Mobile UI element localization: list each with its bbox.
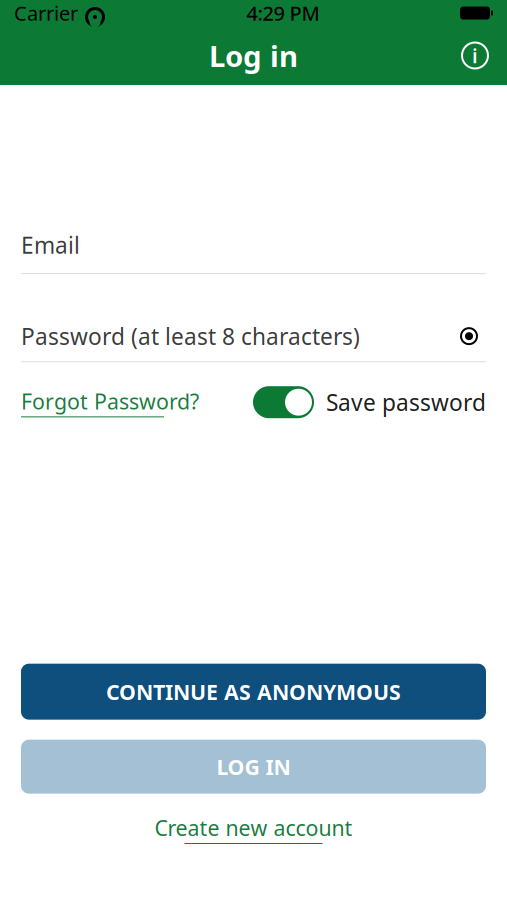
staticText: LOG IN (216, 752, 290, 781)
button[interactable]: LOG IN (21, 740, 486, 794)
staticText: Carrier (14, 0, 78, 26)
staticText: Save password (326, 387, 486, 417)
button[interactable]: Show password (452, 323, 486, 349)
button[interactable]: Forgot Password? (21, 387, 199, 417)
staticText: Forgot Password? (21, 387, 199, 415)
staticText: i (472, 42, 478, 69)
staticText: Log in (209, 36, 298, 75)
button[interactable]: CONTINUE AS ANONYMOUS (21, 664, 486, 720)
staticText: 4:29 PM (246, 0, 319, 26)
button[interactable]: Save password (253, 386, 486, 418)
button[interactable]: Information (453, 33, 497, 77)
button[interactable]: Create new account (21, 814, 486, 844)
staticText: Email (21, 230, 80, 260)
staticText: CONTINUE AS ANONYMOUS (106, 677, 401, 706)
staticText: Password (at least 8 characters) (21, 321, 360, 351)
staticText: Create new account (154, 814, 352, 842)
